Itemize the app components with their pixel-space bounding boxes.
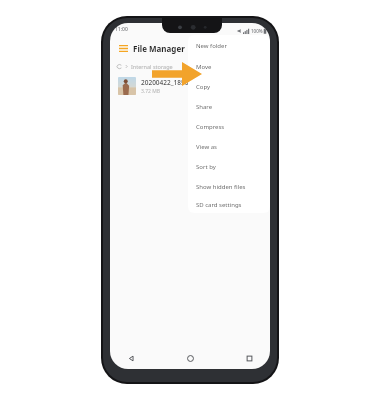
button[interactable]: SD card settings [188, 197, 270, 213]
button[interactable]: Sort by [188, 157, 270, 177]
staticText: 11:00 [115, 26, 128, 33]
button[interactable]: Compress [188, 117, 270, 137]
staticText: Compress [196, 123, 225, 131]
button[interactable]: Home [161, 348, 220, 368]
staticText: Share [196, 103, 213, 111]
staticText: 100% [251, 28, 263, 34]
button[interactable]: 20200422_1850 [110, 74, 270, 98]
staticText: 3.72 MB [141, 88, 161, 95]
button[interactable]: Back [101, 348, 161, 368]
staticText: Internal storage [131, 63, 173, 70]
staticText: Copy [196, 83, 211, 91]
staticText: SD card settings [196, 201, 242, 209]
staticText: View as [196, 143, 217, 151]
button[interactable]: Show hidden files [188, 177, 270, 197]
staticText: File Manager [133, 43, 185, 54]
button[interactable]: New folder [188, 35, 270, 57]
button[interactable]: Share [188, 97, 270, 117]
button[interactable]: Move [188, 57, 270, 77]
staticText: Sort by [196, 163, 216, 171]
staticText: Show hidden files [196, 183, 246, 191]
button[interactable]: View as [188, 137, 270, 157]
button[interactable]: Recent apps [220, 348, 279, 368]
staticText: 20200422_1850 [141, 78, 189, 87]
button[interactable]: Internal storage [117, 60, 169, 72]
staticText: New folder [196, 42, 227, 50]
button[interactable]: Copy [188, 77, 270, 97]
button[interactable]: Open navigation drawer [116, 41, 130, 55]
staticText: Move [196, 63, 212, 71]
